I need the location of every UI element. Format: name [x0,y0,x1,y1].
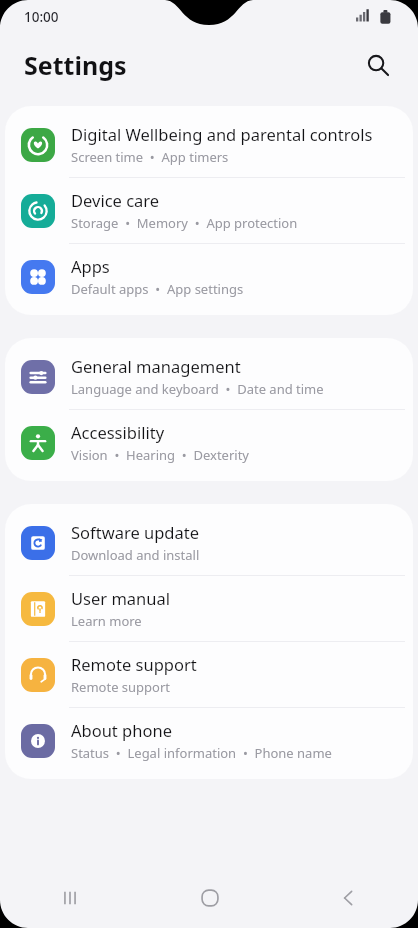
staticText: Download and install [71,546,200,564]
button[interactable]: User manual [5,576,413,641]
staticText: User manual [71,587,170,609]
staticText: Apps [71,255,110,277]
button[interactable]: Apps [5,244,413,309]
staticText: Settings [24,48,127,82]
staticText: Screen time • App timers [71,148,229,166]
staticText: Remote support [71,653,197,675]
button[interactable]: About phone [5,708,413,773]
staticText: Status • Legal information • Phone name [71,744,332,762]
staticText: Default apps • App settings [71,280,244,298]
button[interactable]: Software update [5,510,413,575]
staticText: Software update [71,521,199,543]
staticText: Language and keyboard • Date and time [71,380,324,398]
button[interactable]: General management [5,344,413,409]
button[interactable]: Digital Wellbeing and parental controls [5,112,413,177]
staticText: General management [71,355,241,377]
staticText: Vision • Hearing • Dexterity [71,446,249,464]
button[interactable]: Recents [0,868,140,928]
button[interactable]: Home [140,868,279,928]
button[interactable]: Device care [5,178,413,243]
staticText: Accessibility [71,421,165,443]
staticText: Device care [71,189,160,211]
button[interactable]: Back [279,868,418,928]
button[interactable]: Accessibility [5,410,413,475]
staticText: Remote support [71,678,171,696]
staticText: Storage • Memory • App protection [71,214,298,232]
button[interactable]: Search [356,43,400,87]
button[interactable]: Remote support [5,642,413,707]
staticText: 10:00 [24,8,59,26]
staticText: Digital Wellbeing and parental controls [71,123,373,145]
staticText: About phone [71,719,172,741]
staticText: Learn more [71,612,142,630]
